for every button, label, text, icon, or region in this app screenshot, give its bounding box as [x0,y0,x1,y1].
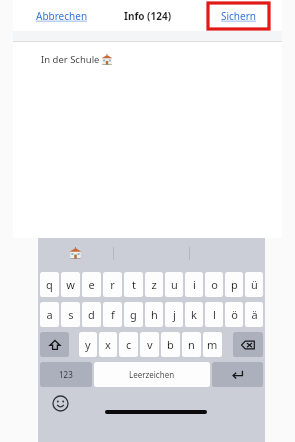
button[interactable]: e [82,272,101,297]
staticText: s [68,307,74,322]
button[interactable]: g [124,302,143,327]
staticText: r [110,277,115,292]
staticText: ö [231,307,238,322]
button[interactable]: m [203,332,222,357]
button[interactable]: c [119,332,138,357]
staticText: Sichern [221,9,256,23]
button[interactable]: x [99,332,117,357]
staticText: w [66,277,75,292]
staticText: 123 [59,369,73,380]
staticText: In der Schule [41,53,100,66]
staticText: p [231,277,238,292]
button[interactable]: y [79,332,97,357]
button[interactable]: 123 [40,362,92,387]
staticText: h [151,307,158,322]
staticText: t [132,277,136,292]
staticText: y [85,337,91,352]
button[interactable]: n [182,332,201,357]
staticText: v [147,337,153,352]
button[interactable]: q [40,272,59,297]
button[interactable]: Abbrechen [36,9,88,23]
button[interactable]: i [185,272,203,297]
button[interactable]: v [140,332,159,357]
staticText: Abbrechen [36,9,88,23]
button[interactable] [38,238,113,269]
button[interactable]: u [165,272,183,297]
staticText: o [211,277,218,292]
staticText: z [151,277,157,292]
staticText: n [188,337,195,352]
button[interactable]: Emoji keyboard [50,393,70,413]
button[interactable]: Backspace [233,332,263,357]
staticText: d [88,307,95,322]
button[interactable]: ö [225,302,243,327]
button[interactable]: t [124,272,143,297]
button[interactable]: r [103,272,122,297]
staticText: e [88,277,95,292]
button[interactable]: w [61,272,80,297]
staticText: Info (124) [124,9,172,23]
staticText: m [207,337,218,352]
staticText: u [171,277,178,292]
button[interactable]: ä [245,302,263,327]
button[interactable]: o [205,272,223,297]
button[interactable]: h [145,302,163,327]
staticText: a [46,307,53,322]
button[interactable]: Shift [40,332,69,357]
button[interactable]: b [161,332,180,357]
staticText: l [213,307,216,322]
button[interactable]: j [165,302,183,327]
button[interactable]: p [225,272,243,297]
button[interactable]: Sichern [207,2,270,30]
button[interactable]: k [185,302,203,327]
staticText: ü [251,277,258,292]
staticText: x [105,337,111,352]
staticText: j [173,307,176,322]
staticText: Leerzeichen [129,369,175,380]
button[interactable]: d [82,302,101,327]
button[interactable]: l [205,302,223,327]
button[interactable]: a [40,302,59,327]
button[interactable]: s [61,302,80,327]
staticText: b [167,337,174,352]
button[interactable]: ü [245,272,263,297]
staticText: ä [251,307,258,322]
staticText: k [191,307,197,322]
button[interactable]: Leerzeichen [94,362,210,387]
staticText: i [193,277,196,292]
button[interactable]: z [145,272,163,297]
staticText: f [111,307,115,322]
button[interactable]: f [103,302,122,327]
staticText: q [46,277,53,292]
staticText: g [130,307,137,322]
button[interactable]: Return [212,362,263,387]
staticText: c [126,337,132,352]
